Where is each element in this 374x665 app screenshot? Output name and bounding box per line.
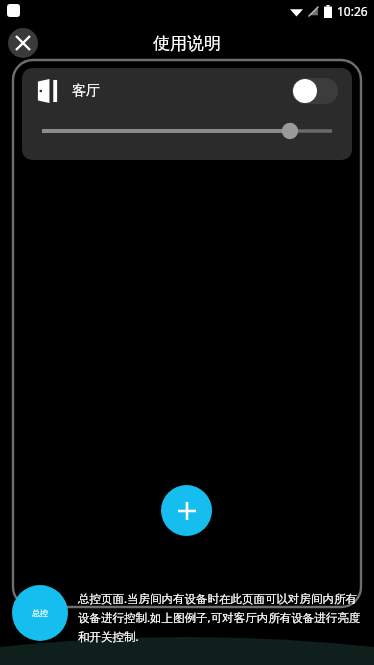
button[interactable]: 总控 (12, 585, 68, 641)
button[interactable]: Power toggle (292, 78, 338, 104)
button[interactable]: Add (161, 485, 212, 536)
button[interactable]: Close (8, 28, 38, 58)
button[interactable] (38, 114, 336, 148)
staticText: 总控 (32, 608, 48, 618)
staticText: 客厅 (72, 82, 100, 100)
staticText: 10:26 (337, 3, 368, 19)
staticText: 总控页面.当房间内有设备时在此页面可以对房间内所有设备进行控制.如上图例子,可对… (78, 591, 366, 645)
staticText: 使用说明 (153, 33, 221, 54)
button[interactable]: 客厅 (22, 68, 352, 160)
